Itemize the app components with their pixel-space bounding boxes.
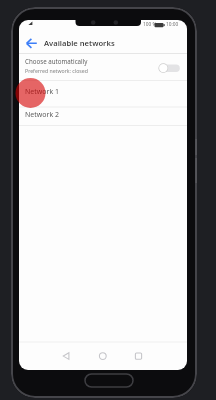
staticText: Available networks <box>44 38 115 48</box>
staticText: 100 % <box>143 21 157 28</box>
staticText: Network 2 <box>25 110 59 120</box>
staticText: Preferred network: closed <box>25 67 88 74</box>
button[interactable] <box>21 36 41 52</box>
staticText: Network 1 <box>25 87 59 97</box>
button[interactable]: Network 2 <box>19 107 187 126</box>
staticText: Choose automatically <box>25 57 88 65</box>
button[interactable] <box>55 346 83 366</box>
button[interactable]: Network 1 <box>19 81 187 108</box>
button[interactable]: Choose automatically <box>19 54 187 81</box>
staticText: 10:00 <box>166 21 179 28</box>
button[interactable] <box>89 346 117 366</box>
button[interactable] <box>158 63 181 73</box>
button[interactable] <box>124 346 152 366</box>
